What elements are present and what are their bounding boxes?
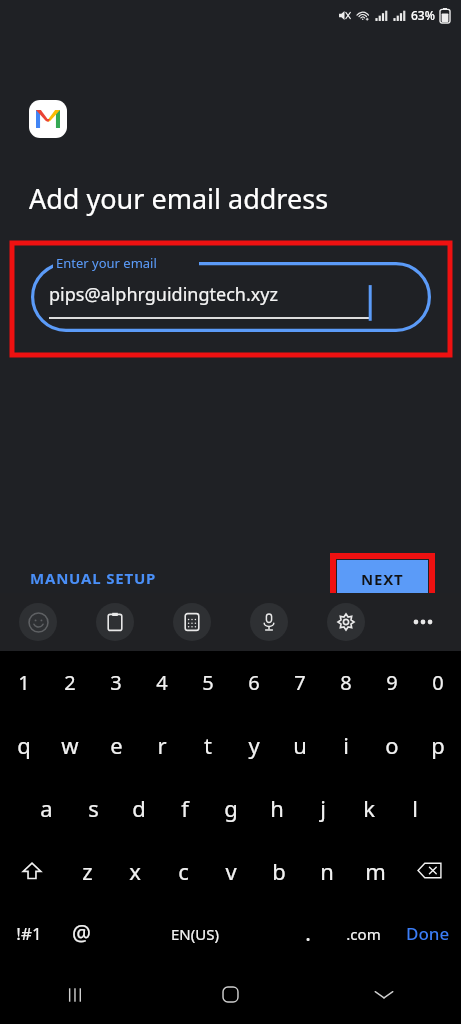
staticText: MANUAL SETUP [30,568,157,588]
button[interactable]: 8 [323,651,369,713]
button[interactable]: n [303,839,351,902]
staticText: c [178,856,189,886]
button[interactable]: Shift [0,839,63,902]
button[interactable]: z [63,839,111,902]
button[interactable]: Recent apps [0,965,153,1024]
staticText: y [248,730,260,760]
staticText: q [17,730,31,760]
button[interactable]: p [415,713,461,776]
staticText: u [293,730,307,760]
button[interactable]: l [392,776,438,839]
staticText: pips@alphrguidingtech.xyz [49,282,278,307]
button[interactable]: k [346,776,392,839]
button[interactable]: r [139,713,185,776]
button[interactable]: f [162,776,208,839]
button[interactable]: v [207,839,255,902]
staticText: o [385,730,399,760]
button[interactable]: Voice input [230,593,307,651]
button[interactable]: @ [57,902,106,965]
staticText: 4 [156,669,168,696]
staticText: j [320,793,326,823]
button[interactable]: MANUAL SETUP [18,560,169,596]
staticText: 2 [64,669,76,696]
staticText: a [40,793,53,823]
staticText: Add your email address [29,180,329,217]
button[interactable]: 7 [277,651,323,713]
staticText: w [61,730,79,760]
button[interactable]: .com [332,902,394,965]
button[interactable]: 1 [0,651,47,713]
button[interactable]: Emoji [0,593,76,651]
button[interactable]: Gmail [29,100,67,138]
button[interactable]: Keyboard settings [307,593,384,651]
staticText: e [110,730,123,760]
staticText: . [305,919,311,948]
staticText: h [270,793,284,823]
staticText: 6 [248,669,260,696]
staticText: .com [346,924,381,944]
staticText: m [365,856,386,886]
staticText: r [157,730,167,760]
button[interactable]: o [369,713,415,776]
button[interactable]: 9 [369,651,415,713]
staticText: @ [72,919,91,948]
staticText: b [272,856,286,886]
staticText: p [431,730,445,760]
staticText: 7 [294,669,306,696]
button[interactable]: d [116,776,162,839]
staticText: 9 [386,669,398,696]
staticText: z [82,856,93,886]
button[interactable]: 4 [139,651,185,713]
staticText: s [88,793,99,823]
button[interactable]: u [277,713,323,776]
button[interactable]: Keypad [153,593,230,651]
staticText: Enter your email [56,254,157,272]
button[interactable]: 0 [415,651,461,713]
button[interactable]: i [323,713,369,776]
button[interactable]: 2 [47,651,93,713]
button[interactable]: Done [394,902,461,965]
button[interactable]: g [208,776,254,839]
staticText: 3 [110,669,122,696]
button[interactable]: j [300,776,346,839]
button[interactable]: y [231,713,277,776]
staticText: k [363,793,375,823]
staticText: d [132,793,146,823]
staticText: l [412,793,418,823]
button[interactable]: NEXT [337,560,428,597]
button[interactable]: More options [384,593,461,651]
button[interactable]: q [0,713,47,776]
button[interactable]: s [70,776,116,839]
button[interactable]: Clipboard [76,593,153,651]
button[interactable]: w [47,713,93,776]
button[interactable]: b [255,839,303,902]
button[interactable]: c [159,839,207,902]
staticText: 63% [411,7,435,23]
button[interactable]: 6 [231,651,277,713]
button[interactable]: 5 [185,651,231,713]
button[interactable]: . [283,902,332,965]
button[interactable]: t [185,713,231,776]
staticText: x [129,856,141,886]
staticText: !#1 [16,922,42,945]
button[interactable]: EN(US) [106,902,283,965]
button[interactable]: Hide keyboard [307,965,461,1024]
button[interactable]: x [111,839,159,902]
staticText: 5 [202,669,214,696]
staticText: n [320,856,334,886]
staticText: EN(US) [171,924,219,944]
staticText: 0 [432,669,444,696]
button[interactable]: !#1 [0,902,57,965]
button[interactable]: a [23,776,70,839]
staticText: 1 [18,669,30,696]
button[interactable]: 3 [93,651,139,713]
button[interactable]: e [93,713,139,776]
button[interactable]: m [351,839,399,902]
staticText: i [343,730,349,760]
button[interactable]: Enter your email [31,262,431,332]
staticText: NEXT [361,569,404,589]
button[interactable]: Backspace [399,839,461,902]
button[interactable]: Home [153,965,307,1024]
staticText: g [224,793,238,823]
button[interactable]: h [254,776,300,839]
